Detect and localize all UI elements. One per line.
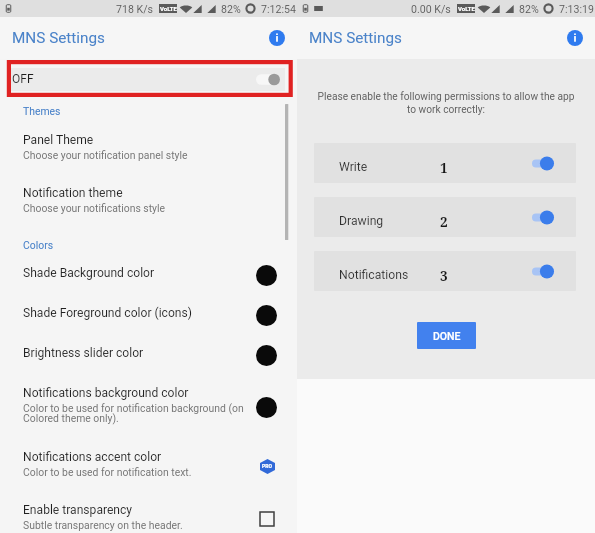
- staticText: 0.00 K/s: [411, 3, 451, 15]
- staticText: Color to be used for notification text.: [23, 466, 192, 478]
- button[interactable]: Panel Theme: [0, 122, 297, 175]
- staticText: Subtle transparency on the header.: [23, 519, 183, 531]
- staticText: 7:13:19: [559, 3, 594, 15]
- staticText: Shade Foreground color (icons): [23, 306, 192, 320]
- button[interactable]: App info: [564, 27, 586, 49]
- staticText: 718 K/s: [116, 3, 153, 15]
- button[interactable]: Permission toggle: [532, 210, 554, 225]
- button[interactable]: Notifications: [314, 251, 576, 291]
- staticText: VoLTE: [160, 5, 177, 12]
- staticText: DONE: [433, 330, 461, 342]
- button[interactable]: Shade Background color: [0, 255, 297, 295]
- staticText: 3: [440, 267, 448, 285]
- staticText: 82%: [519, 3, 539, 15]
- staticText: Notifications: [339, 268, 409, 282]
- staticText: 7:12:54: [261, 3, 296, 15]
- button[interactable]: Notification theme: [0, 175, 297, 228]
- button[interactable]: Shade Foreground color (icons): [0, 295, 297, 335]
- button[interactable]: Notifications background color: [0, 375, 297, 439]
- staticText: Notifications accent color: [23, 450, 162, 464]
- button[interactable]: Enable transparency: [258, 510, 276, 528]
- staticText: Choose your notification panel style: [23, 149, 188, 161]
- staticText: Please enable the following permissions …: [313, 91, 579, 115]
- staticText: Notifications background color: [23, 386, 189, 400]
- staticText: Themes: [23, 105, 297, 117]
- button[interactable]: Pro feature: [259, 458, 275, 474]
- staticText: OFF: [12, 72, 34, 86]
- staticText: Drawing: [339, 214, 384, 228]
- button[interactable]: Pick color: [256, 305, 277, 326]
- button[interactable]: Enable transparency: [0, 492, 297, 533]
- staticText: PRO: [262, 463, 272, 469]
- staticText: Write: [339, 160, 368, 174]
- staticText: Brightness slider color: [23, 346, 144, 360]
- button[interactable]: Permission toggle: [532, 264, 554, 279]
- button[interactable]: Pick color: [256, 397, 277, 418]
- button[interactable]: Write: [314, 143, 576, 183]
- button[interactable]: Pick color: [256, 345, 277, 366]
- staticText: Colors: [23, 239, 297, 251]
- button[interactable]: Pick color: [256, 265, 277, 286]
- staticText: MNS Settings: [12, 29, 105, 47]
- button[interactable]: DONE: [417, 322, 476, 349]
- staticText: 82%: [221, 3, 241, 15]
- button[interactable]: Notifications accent color: [0, 439, 297, 492]
- staticText: Panel Theme: [23, 133, 94, 147]
- button[interactable]: Master toggle: [256, 73, 280, 86]
- staticText: VoLTE: [458, 5, 475, 12]
- staticText: Shade Background color: [23, 266, 155, 280]
- staticText: 1: [440, 159, 448, 177]
- button[interactable]: Permission toggle: [532, 156, 554, 171]
- button[interactable]: Drawing: [314, 197, 576, 237]
- staticText: Notification theme: [23, 186, 123, 200]
- staticText: MNS Settings: [309, 29, 402, 47]
- button[interactable]: Brightness slider color: [0, 335, 297, 375]
- staticText: Color to be used for notification backgr…: [23, 402, 248, 425]
- staticText: 2: [440, 213, 448, 231]
- staticText: Enable transparency: [23, 503, 133, 517]
- button[interactable]: App info: [266, 27, 288, 49]
- staticText: Choose your notifications style: [23, 202, 166, 214]
- button[interactable]: OFF: [11, 68, 285, 91]
